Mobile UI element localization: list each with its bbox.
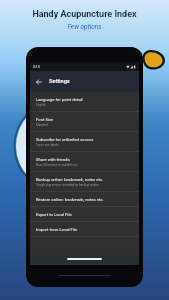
staticText: Font Size: [36, 117, 54, 122]
staticText: English: [36, 103, 46, 106]
button[interactable]: Back: [33, 76, 44, 87]
staticText: Export to Local File: [36, 212, 72, 217]
button[interactable]: Font Size: [30, 112, 139, 132]
button[interactable]: Backup online: bookmark, notes etc.: [30, 172, 139, 192]
staticText: Backup online: bookmark, notes etc.: [36, 177, 104, 182]
button[interactable]: Share with friends: [30, 152, 139, 172]
staticText: Now, iOS version is available too.: [36, 163, 79, 166]
button[interactable]: Import from Local File: [30, 222, 139, 237]
staticText: Subscribe for unlimited access: [36, 137, 94, 142]
staticText: Standard: [36, 123, 48, 126]
staticText: Restore online: bookmark, notes etc.: [36, 197, 104, 202]
staticText: Google play service is needed for backup…: [36, 183, 99, 186]
staticText: Language for point detail: [36, 97, 83, 102]
staticText: Few options: [67, 23, 102, 31]
staticText: Tap to see details: [36, 143, 59, 146]
staticText: Import from Local File: [36, 227, 78, 232]
button[interactable]: Language for point detail: [30, 92, 139, 112]
button[interactable]: Export to Local File: [30, 207, 139, 222]
staticText: 3:13: [33, 65, 40, 69]
staticText: Handy Acupuncture Index: [32, 9, 137, 20]
button[interactable]: Subscribe for unlimited access: [30, 132, 139, 152]
staticText: Settings: [49, 78, 70, 85]
staticText: Share with friends: [36, 157, 70, 162]
other: Hand logo: [142, 48, 168, 70]
button[interactable]: Restore online: bookmark, notes etc.: [30, 192, 139, 207]
